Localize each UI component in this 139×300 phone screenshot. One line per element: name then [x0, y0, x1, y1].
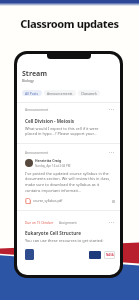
staticText: Assignment	[59, 221, 77, 225]
staticText: What would I expect to this cell if it w…	[25, 126, 111, 137]
staticText: Announcement	[25, 108, 49, 112]
button[interactable]: All Posts	[22, 90, 42, 96]
staticText: Stream	[22, 69, 48, 79]
button[interactable]: More options	[108, 107, 115, 112]
staticText: Sunday, Apr 14 at 3:04 PM	[35, 164, 71, 168]
staticText: Eukaryote Cell Structure	[25, 230, 81, 236]
staticText: course_syllabus.pdf	[33, 199, 63, 203]
staticText: Cell Division - Meiosis	[25, 118, 75, 124]
staticText: Biology	[22, 79, 34, 83]
button[interactable]: Classwork	[78, 90, 100, 96]
staticText: I've posted the updated course syllabus …	[25, 171, 111, 194]
staticText: Henrietta Craig	[35, 158, 62, 163]
button[interactable]: Due on 15 October	[17, 211, 120, 264]
staticText: Announcements	[47, 91, 73, 95]
button[interactable]: More options	[108, 150, 115, 155]
button[interactable]: Khan Academy link	[89, 251, 101, 259]
staticText: Announcement	[25, 151, 49, 155]
button[interactable]: Announcement	[17, 144, 120, 210]
button[interactable]: Announcement	[17, 103, 120, 143]
button[interactable]: Open attached document	[25, 249, 34, 260]
staticText: You can use these resources to get start…	[25, 238, 104, 243]
staticText: Due on 15 October	[25, 221, 54, 225]
staticText: Classwork	[81, 91, 97, 95]
staticText: All Posts	[25, 91, 39, 95]
button[interactable]: course_syllabus.pdf	[25, 198, 115, 204]
staticText: NASA	[106, 253, 114, 257]
button[interactable]: Announcements	[44, 90, 76, 96]
button[interactable]: NASA link	[104, 251, 115, 259]
button[interactable]: More options	[108, 220, 115, 225]
staticText: Classroom updates	[20, 16, 119, 31]
